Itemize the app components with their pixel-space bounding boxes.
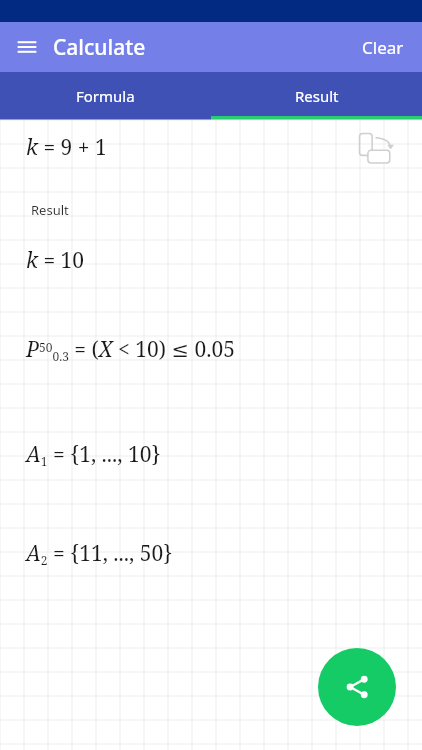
staticText: A2 = {11, ..., 50} [26, 539, 173, 569]
button[interactable]: Clear [352, 30, 414, 65]
staticText: P500.3 = (X < 10) ≤ 0.05 [26, 335, 236, 365]
staticText: Calculate [53, 33, 146, 62]
staticText: k = 10 [26, 246, 85, 275]
button[interactable]: Rotate screen [357, 131, 399, 173]
button[interactable]: Share [318, 648, 396, 726]
button[interactable]: Result [211, 72, 422, 120]
staticText: Clear [362, 36, 404, 59]
staticText: Result [295, 86, 339, 106]
button[interactable]: Formula [0, 72, 211, 120]
button[interactable]: Open navigation menu [15, 35, 39, 59]
staticText: k = 9 + 1 [26, 133, 107, 162]
staticText: Formula [76, 86, 135, 106]
staticText: Result [31, 201, 69, 219]
staticText: A1 = {1, ..., 10} [26, 440, 161, 470]
